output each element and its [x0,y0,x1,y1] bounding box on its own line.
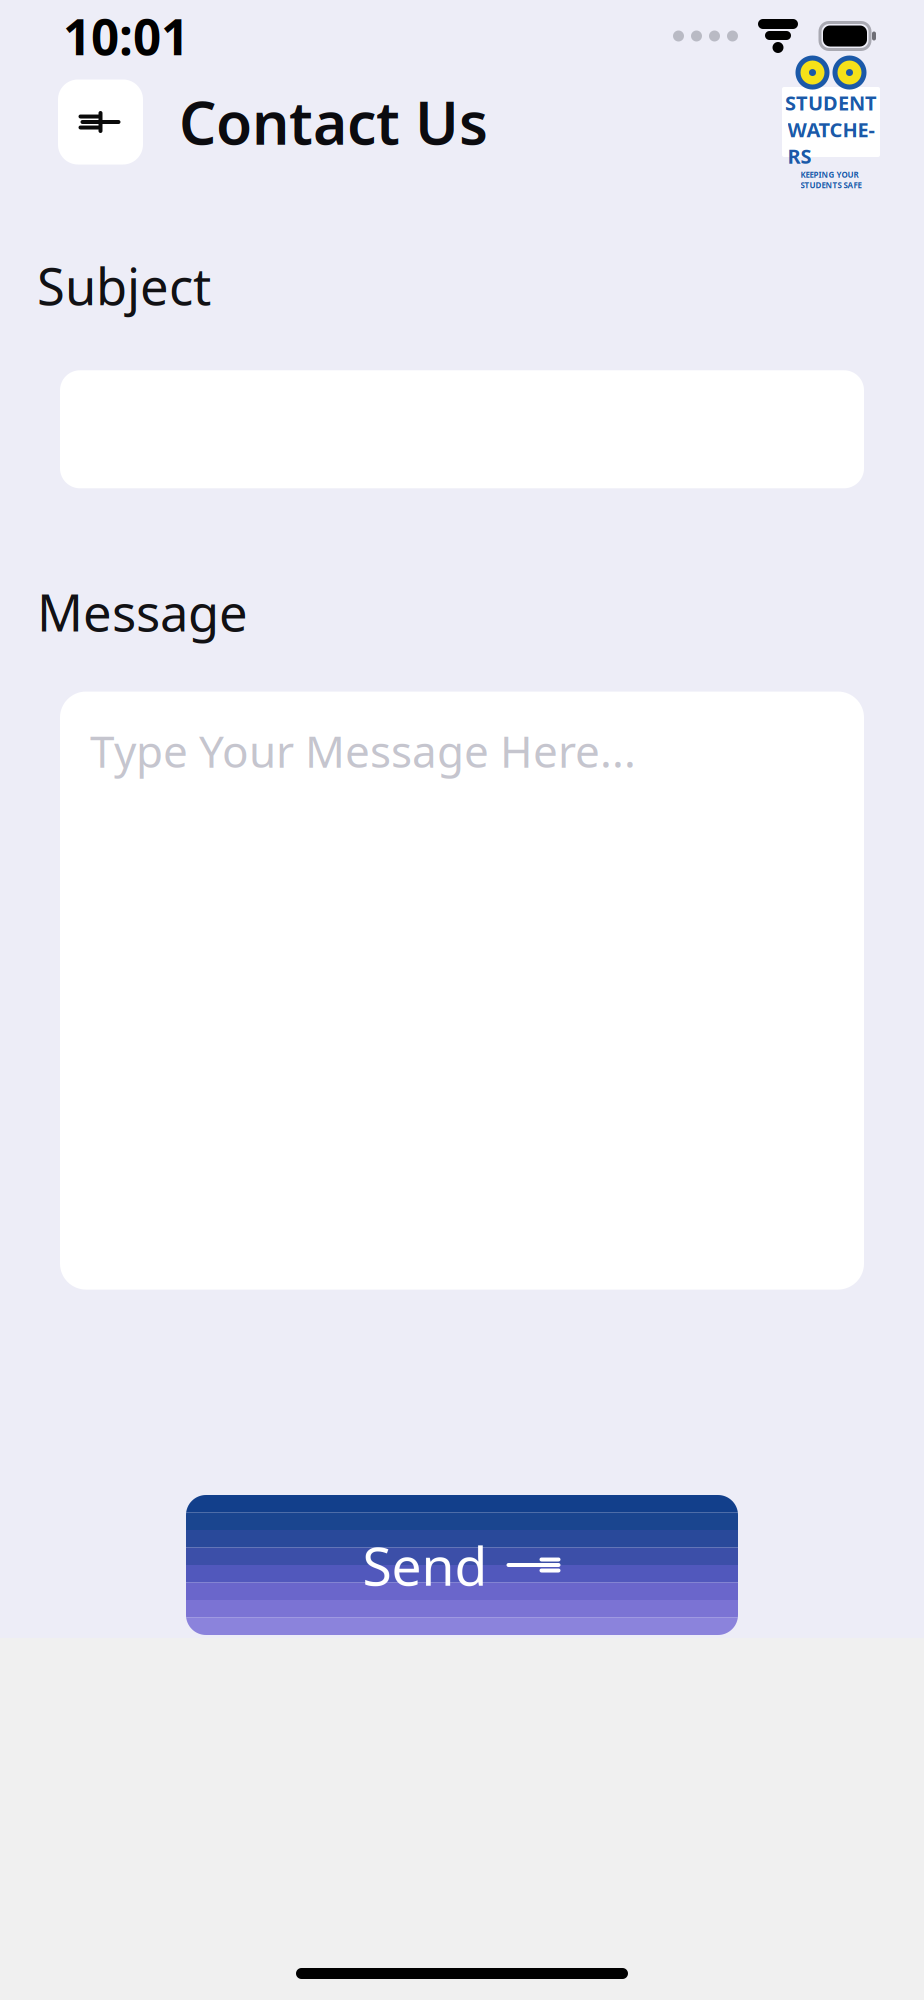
staticText: WATCHERS [787,116,874,169]
staticText: KEEPING YOUR STUDENTS SAFE [800,169,861,190]
button[interactable]: Send [186,1495,738,1635]
staticText: Type Your Message Here... [90,722,636,780]
staticText: 10:01 [63,3,189,69]
staticText: STUDENT [785,89,877,116]
button[interactable]: Student Watchers logo [782,87,880,157]
staticText: Send [362,1530,487,1600]
button[interactable]: Contact Us [143,83,488,161]
staticText: Contact Us [179,83,488,161]
button[interactable]: Back [58,79,143,164]
staticText: Subject [37,252,211,319]
staticText: Message [37,578,248,646]
